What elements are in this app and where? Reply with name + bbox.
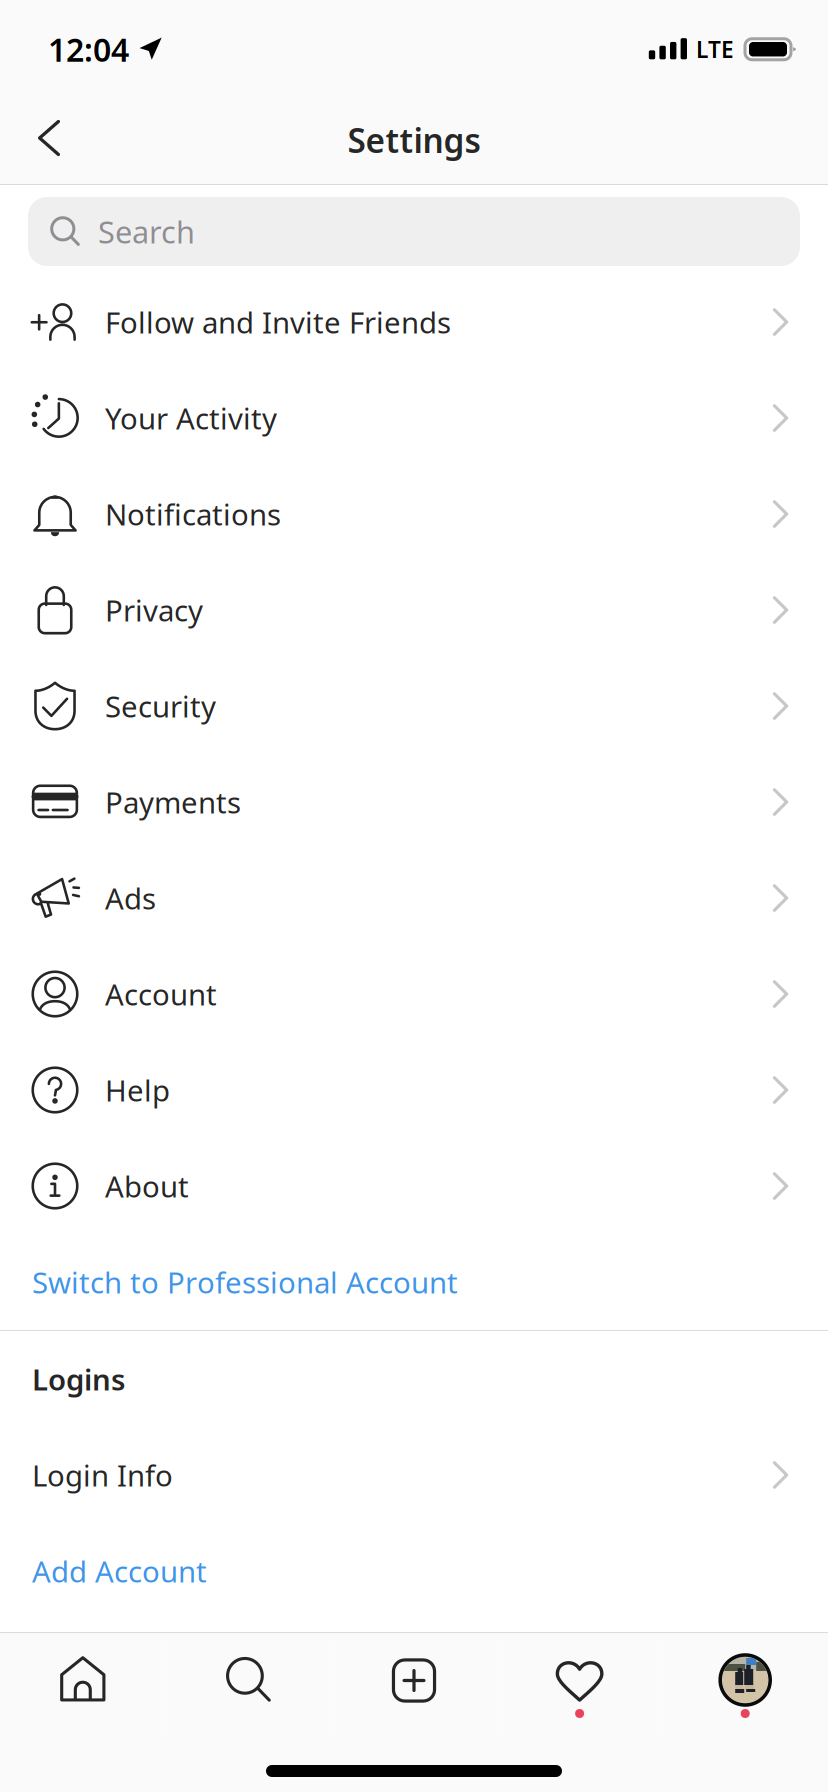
button[interactable]: Notifications bbox=[0, 466, 828, 562]
button[interactable]: Switch to Professional Account bbox=[0, 1234, 828, 1330]
staticText: Follow and Invite Friends bbox=[105, 302, 451, 341]
button[interactable]: Search bbox=[0, 185, 828, 274]
staticText: Help bbox=[105, 1070, 170, 1109]
staticText: Privacy bbox=[105, 590, 203, 629]
button[interactable]: Add Account bbox=[0, 1523, 828, 1619]
staticText: Security bbox=[105, 686, 216, 725]
staticText: LTE bbox=[696, 34, 734, 64]
staticText: Logins bbox=[32, 1359, 125, 1398]
staticText: Account bbox=[105, 974, 217, 1013]
button[interactable]: Activity bbox=[497, 1633, 662, 1733]
staticText: Your Activity bbox=[105, 398, 277, 437]
staticText: Settings bbox=[347, 118, 480, 162]
button[interactable]: New Post bbox=[331, 1633, 497, 1733]
button[interactable]: Login Info bbox=[0, 1427, 828, 1523]
button[interactable]: Follow and Invite Friends bbox=[0, 274, 828, 370]
staticText: Add Account bbox=[32, 1551, 207, 1590]
staticText: Ads bbox=[105, 878, 156, 917]
button[interactable]: Profile bbox=[662, 1633, 828, 1733]
button[interactable]: Logins bbox=[0, 1331, 828, 1427]
button[interactable]: Search bbox=[166, 1633, 331, 1733]
staticText: Login Info bbox=[32, 1455, 173, 1494]
staticText: Payments bbox=[105, 782, 241, 821]
button[interactable]: Back bbox=[9, 92, 89, 184]
staticText: 12:04 bbox=[48, 28, 129, 70]
button[interactable]: Security bbox=[0, 658, 828, 754]
button[interactable]: Ads bbox=[0, 850, 828, 946]
staticText: Notifications bbox=[105, 494, 281, 533]
staticText: Search bbox=[98, 211, 195, 252]
button[interactable]: Account bbox=[0, 946, 828, 1042]
button[interactable]: Privacy bbox=[0, 562, 828, 658]
staticText: Switch to Professional Account bbox=[32, 1262, 458, 1301]
button[interactable]: Payments bbox=[0, 754, 828, 850]
button[interactable]: Home bbox=[0, 1633, 166, 1733]
button[interactable]: Help bbox=[0, 1042, 828, 1138]
staticText: About bbox=[105, 1166, 189, 1205]
button[interactable]: About bbox=[0, 1138, 828, 1234]
button[interactable]: Your Activity bbox=[0, 370, 828, 466]
